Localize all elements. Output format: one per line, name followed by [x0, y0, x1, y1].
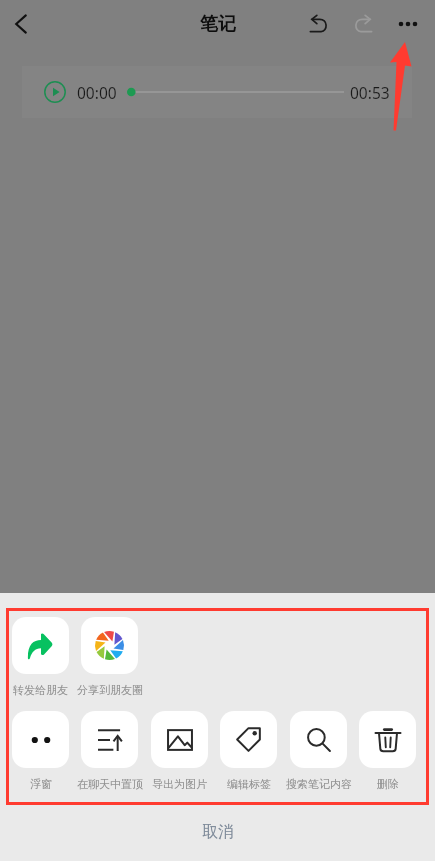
- staticText: 在聊天中置顶: [77, 777, 143, 791]
- button[interactable]: [151, 711, 208, 794]
- staticText: 转发给朋友: [13, 683, 68, 697]
- staticText: 00:53: [350, 82, 390, 103]
- button[interactable]: [12, 711, 69, 794]
- staticText: 编辑标签: [227, 777, 271, 791]
- staticText: 分享到朋友圈: [77, 683, 143, 697]
- button[interactable]: Redo: [344, 5, 382, 43]
- staticText: 删除: [377, 777, 399, 791]
- button[interactable]: 取消: [0, 803, 435, 861]
- button[interactable]: Undo: [300, 5, 338, 43]
- staticText: 笔记: [200, 13, 236, 36]
- button[interactable]: 00:00: [22, 66, 412, 118]
- button[interactable]: Back: [2, 5, 40, 43]
- button[interactable]: [220, 711, 277, 794]
- staticText: 取消: [202, 822, 234, 842]
- staticText: 导出为图片: [152, 777, 207, 791]
- staticText: 浮窗: [30, 777, 52, 791]
- button[interactable]: [81, 711, 138, 794]
- button[interactable]: [12, 617, 69, 700]
- button[interactable]: [359, 711, 416, 794]
- button[interactable]: [290, 711, 347, 794]
- staticText: 00:00: [77, 82, 117, 103]
- staticText: 搜索笔记内容: [286, 777, 352, 791]
- button[interactable]: [81, 617, 138, 700]
- button[interactable]: More options: [389, 5, 427, 43]
